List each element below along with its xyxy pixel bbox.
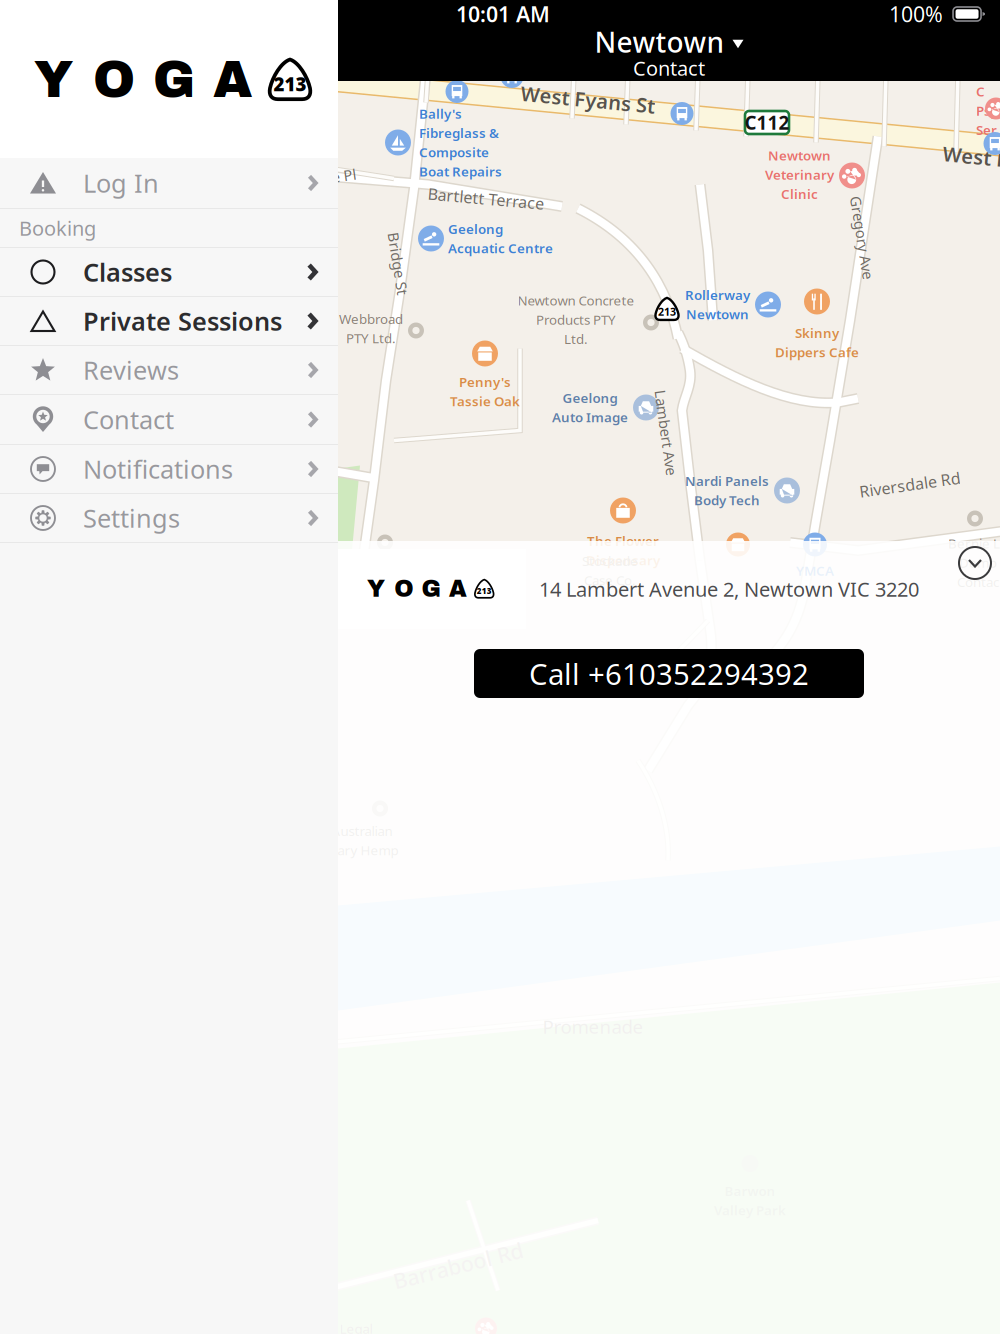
staticText: Lambert Ave (623, 423, 709, 442)
staticText: 14 Lambert Avenue 2, Newtown VIC 3220 (539, 576, 919, 602)
staticText: Clinic (781, 185, 818, 203)
staticText: Auto Image (552, 408, 628, 426)
staticText: G (153, 52, 195, 107)
staticText: O (394, 576, 413, 602)
staticText: Y (34, 52, 73, 107)
staticText: The Flower (587, 532, 659, 550)
button[interactable]: Classes (0, 248, 338, 297)
staticText: West F (942, 143, 1000, 170)
staticText: Veterinary (765, 166, 834, 183)
staticText: 213 (273, 72, 306, 96)
staticText: 100% (889, 0, 943, 28)
staticText: YMCA (796, 562, 834, 579)
staticText: Contact (83, 403, 174, 436)
staticText: 213 (477, 585, 492, 596)
staticText: Booking (19, 215, 96, 241)
staticText: Contact (633, 55, 705, 81)
staticText: Rollerway (685, 286, 750, 304)
staticText: Newtown Concrete (517, 291, 634, 309)
staticText: Classes (83, 255, 172, 289)
staticText: Newtown (686, 305, 749, 323)
button[interactable]: Collapse (955, 543, 995, 583)
staticText: Ltd. (564, 330, 588, 348)
staticText: A (449, 576, 467, 602)
button[interactable]: Notifications (0, 445, 338, 494)
staticText: C112 (744, 110, 789, 135)
staticText: Fibreglass & (419, 124, 499, 142)
staticText: mary Hemp (325, 841, 398, 859)
staticText: O (93, 52, 135, 107)
staticText: PTY Ltd. (346, 329, 396, 347)
staticText: Newtown (768, 146, 831, 164)
staticText: C (976, 82, 985, 100)
staticText: West Fyans St (520, 86, 655, 113)
staticText: Promenade (542, 1014, 643, 1039)
staticText: 10:01 AM (456, 0, 550, 28)
button[interactable]: Settings (0, 494, 338, 543)
staticText: Boat Repairs (419, 162, 502, 180)
staticText: Settings (83, 501, 180, 535)
staticText: Tassie Oak (450, 392, 520, 410)
staticText: Private Sessions (83, 304, 282, 338)
staticText: Body Tech (694, 491, 760, 509)
button[interactable]: Call +610352294392 (474, 649, 864, 698)
button[interactable]: Reviews (0, 346, 338, 395)
staticText: 213 (658, 304, 676, 319)
staticText: Newtown (594, 23, 724, 61)
button[interactable]: Private Sessions (0, 297, 338, 346)
staticText: Penny's (459, 373, 511, 391)
staticText: Geelong (562, 389, 617, 407)
staticText: Riversdale Rd (859, 474, 961, 495)
button[interactable]: Log In (0, 158, 338, 209)
staticText: A (213, 52, 252, 107)
staticText: Webbroad (339, 310, 403, 328)
button[interactable]: Contact (0, 395, 338, 445)
staticText: Call +610352294392 (529, 654, 809, 693)
staticText: Composite (419, 143, 489, 161)
staticText: Australian (331, 822, 392, 840)
staticText: Stockade (582, 552, 638, 570)
staticText: G (421, 576, 440, 602)
staticText: Bartlett Terrace (427, 188, 544, 209)
staticText: Gregory Ave (820, 228, 904, 247)
staticText: Log In (83, 166, 159, 200)
staticText: Reviews (83, 353, 179, 387)
staticText: Products PTY (536, 311, 616, 328)
staticText: Nardi Panels (685, 472, 769, 490)
staticText: Ser (976, 121, 997, 139)
staticText: Acquatic Centre (448, 239, 553, 257)
button[interactable]: Newtown (594, 23, 743, 61)
staticText: Legal (339, 1320, 372, 1334)
staticText: Y (367, 576, 385, 602)
staticText: Dippers Cafe (775, 343, 859, 361)
staticText: Psych (976, 102, 1000, 119)
staticText: Bernie Le (948, 534, 1000, 552)
staticText: Barrabool Rd (391, 1251, 524, 1280)
staticText: Dispensary (586, 551, 660, 569)
staticText: Bally's (419, 105, 462, 122)
staticText: Contac (957, 573, 999, 591)
staticText: Demo (959, 554, 997, 571)
staticText: Bridge St (366, 254, 429, 273)
staticText: Skinny (795, 324, 839, 342)
staticText: e Pl (331, 166, 356, 185)
staticText: Geelong (448, 220, 503, 238)
staticText: Case Co. (584, 571, 636, 589)
staticText: Notifications (83, 452, 233, 486)
